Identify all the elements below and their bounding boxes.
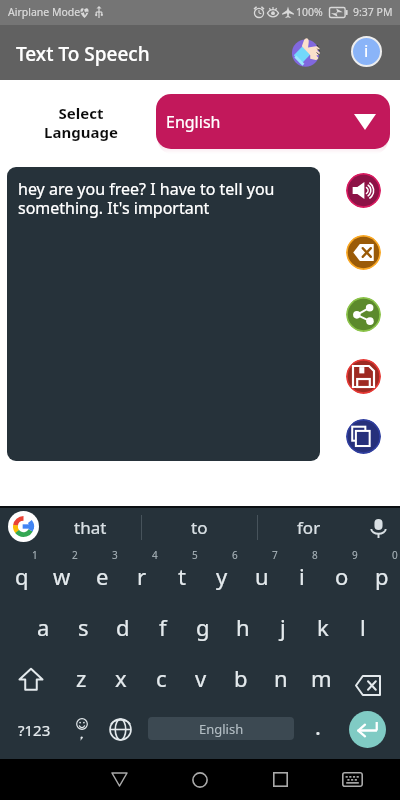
staticText: e — [96, 561, 109, 591]
staticText: k — [317, 612, 329, 642]
button[interactable]: t — [162, 548, 202, 598]
button[interactable]: s — [63, 603, 103, 651]
button[interactable]: Clear text — [346, 235, 381, 270]
button[interactable]: y — [202, 548, 242, 598]
button[interactable]: d — [103, 603, 143, 651]
staticText: u — [255, 561, 269, 591]
button[interactable]: Rate app — [289, 34, 323, 68]
button[interactable]: Home — [178, 759, 222, 800]
button[interactable]: Copy — [346, 419, 381, 454]
staticText: for — [297, 516, 321, 539]
staticText: 3 — [112, 548, 118, 562]
button[interactable]: Google — [8, 511, 39, 542]
button[interactable]: Change language — [100, 705, 140, 753]
staticText: c — [156, 663, 167, 693]
button[interactable]: m — [301, 654, 341, 702]
staticText: l — [360, 612, 366, 642]
staticText: x — [115, 663, 127, 693]
staticText: 2 — [72, 548, 78, 562]
button[interactable]: Shift — [5, 655, 57, 703]
staticText: p — [375, 561, 389, 591]
staticText: Select Language — [44, 103, 118, 142]
button[interactable]: i — [282, 548, 322, 598]
button[interactable]: to — [151, 506, 247, 549]
staticText: g — [196, 612, 210, 642]
staticText: f — [159, 612, 167, 642]
button[interactable]: v — [181, 654, 221, 702]
button[interactable]: c — [141, 654, 181, 702]
button[interactable]: o — [322, 548, 362, 598]
staticText: r — [137, 561, 147, 591]
button[interactable]: z — [61, 654, 101, 702]
button[interactable]: w — [42, 548, 82, 598]
button[interactable]: r — [122, 548, 162, 598]
button[interactable]: p — [362, 548, 400, 598]
button[interactable]: b — [221, 654, 261, 702]
button[interactable]: Select Language — [35, 100, 127, 144]
button[interactable]: hey are you free? I have to tell you som… — [7, 167, 320, 461]
button[interactable]: English — [148, 717, 294, 740]
button[interactable]: Backspace — [342, 661, 394, 709]
button[interactable]: x — [101, 654, 141, 702]
button[interactable]: ?123 — [9, 706, 59, 754]
staticText: . — [315, 711, 321, 741]
staticText: a — [37, 612, 50, 642]
staticText: 0 — [392, 548, 398, 562]
button[interactable]: g — [183, 603, 223, 651]
button[interactable]: e — [82, 548, 122, 598]
button[interactable]: Hide keyboard — [330, 759, 374, 800]
button[interactable]: Save — [346, 359, 381, 394]
button[interactable]: English — [156, 94, 390, 149]
button[interactable]: Voice input — [363, 513, 393, 543]
staticText: n — [274, 663, 288, 693]
staticText: s — [78, 612, 89, 642]
button[interactable]: that — [42, 506, 138, 549]
staticText: 100% — [296, 5, 323, 19]
button[interactable]: Enter — [349, 711, 386, 748]
staticText: 8 — [312, 548, 318, 562]
staticText: that — [74, 516, 107, 539]
staticText: 4 — [152, 548, 158, 562]
staticText: j — [280, 612, 286, 642]
staticText: y — [216, 561, 228, 591]
staticText: b — [234, 663, 248, 693]
staticText: English — [166, 111, 221, 133]
staticText: 6 — [232, 548, 238, 562]
button[interactable]: Share — [346, 297, 381, 332]
button[interactable]: . — [298, 704, 338, 752]
staticText: 7 — [272, 548, 278, 562]
staticText: Text To Speech — [16, 41, 150, 67]
staticText: z — [76, 663, 87, 693]
button[interactable]: l — [343, 603, 383, 651]
button[interactable]: j — [263, 603, 303, 651]
staticText: d — [116, 612, 130, 642]
staticText: ?123 — [18, 720, 51, 740]
staticText: hey are you free? I have to tell you som… — [18, 178, 308, 219]
button[interactable]: n — [261, 654, 301, 702]
button[interactable]: Emoji — [62, 705, 102, 753]
button[interactable]: Recents — [258, 759, 302, 800]
staticText: English — [199, 720, 244, 738]
staticText: h — [236, 612, 250, 642]
button[interactable]: a — [23, 603, 63, 651]
button[interactable]: Back — [97, 759, 141, 800]
button[interactable]: for — [261, 506, 357, 549]
staticText: o — [335, 561, 349, 591]
button[interactable]: q — [2, 548, 42, 598]
staticText: 5 — [192, 548, 198, 562]
staticText: m — [311, 663, 332, 693]
staticText: v — [195, 663, 207, 693]
button[interactable]: u — [242, 548, 282, 598]
staticText: i — [364, 39, 369, 62]
staticText: q — [15, 561, 29, 591]
button[interactable]: Info — [349, 34, 383, 68]
button[interactable]: f — [143, 603, 183, 651]
staticText: 9:37 PM — [353, 5, 393, 19]
button[interactable]: Speak — [346, 173, 381, 208]
staticText: to — [191, 516, 208, 539]
button[interactable]: h — [223, 603, 263, 651]
staticText: i — [299, 561, 305, 591]
staticText: w — [53, 561, 71, 591]
button[interactable]: k — [303, 603, 343, 651]
staticText: 1 — [32, 548, 38, 562]
